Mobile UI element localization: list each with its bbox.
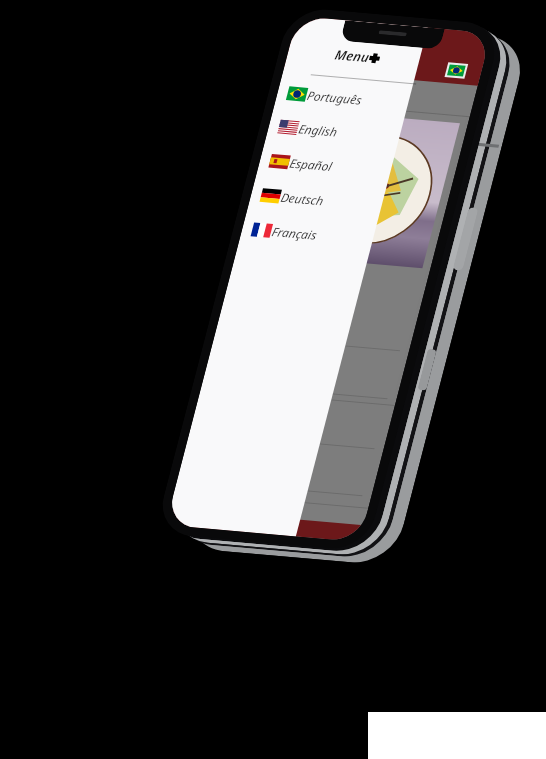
staticText: Recheado	[235, 231, 327, 321]
staticText: Português	[299, 62, 370, 132]
staticText: Español	[282, 136, 340, 193]
button[interactable]: Language	[443, 57, 470, 84]
button[interactable]: English	[265, 86, 352, 172]
staticText: Deutsch	[273, 170, 332, 228]
button[interactable]: Português	[273, 46, 376, 147]
button[interactable]: Español	[256, 119, 346, 208]
staticText: Français	[264, 203, 325, 263]
button[interactable]: Deutsch	[247, 153, 338, 242]
button[interactable]: Français	[238, 186, 331, 278]
button[interactable]: Menu	[326, 25, 389, 87]
staticText: English	[291, 103, 346, 157]
staticText: Menu	[326, 30, 378, 81]
